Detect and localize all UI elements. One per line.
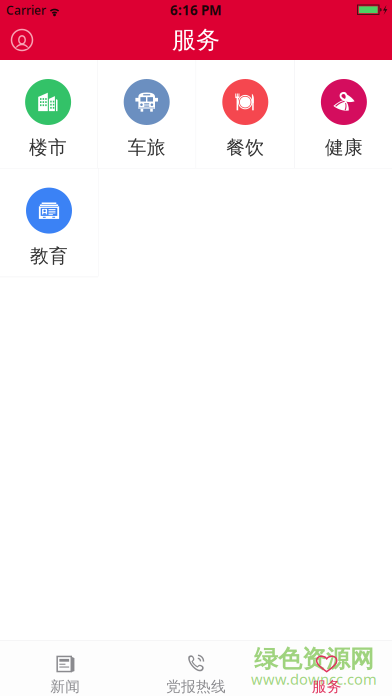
staticText: 6:16 PM — [170, 1, 222, 19]
button[interactable]: 教育 — [0, 169, 98, 277]
staticText: 党报热线 — [166, 677, 226, 695]
staticText: www.downcc.com — [251, 669, 377, 689]
staticText: 服务 — [312, 677, 342, 695]
staticText: 绿色资源网 — [254, 644, 374, 674]
button[interactable]: 新闻 — [0, 640, 131, 696]
button[interactable]: 楼市 — [0, 60, 97, 168]
button[interactable]: 党报热线 — [131, 640, 261, 696]
button[interactable]: 服务 — [261, 640, 392, 696]
button[interactable]: 车旅 — [98, 60, 196, 168]
staticText: 教育 — [30, 245, 68, 267]
staticText: 新闻 — [50, 677, 80, 695]
button[interactable]: 健康 — [295, 60, 392, 168]
staticText: Carrier — [6, 2, 46, 18]
staticText: 服务 — [172, 25, 220, 55]
button[interactable]: Account — [0, 20, 44, 60]
button[interactable]: 餐饮 — [196, 60, 294, 168]
staticText: 餐饮 — [226, 136, 264, 159]
staticText: 楼市 — [29, 136, 67, 159]
staticText: 健康 — [325, 136, 363, 159]
staticText: 车旅 — [128, 136, 166, 159]
